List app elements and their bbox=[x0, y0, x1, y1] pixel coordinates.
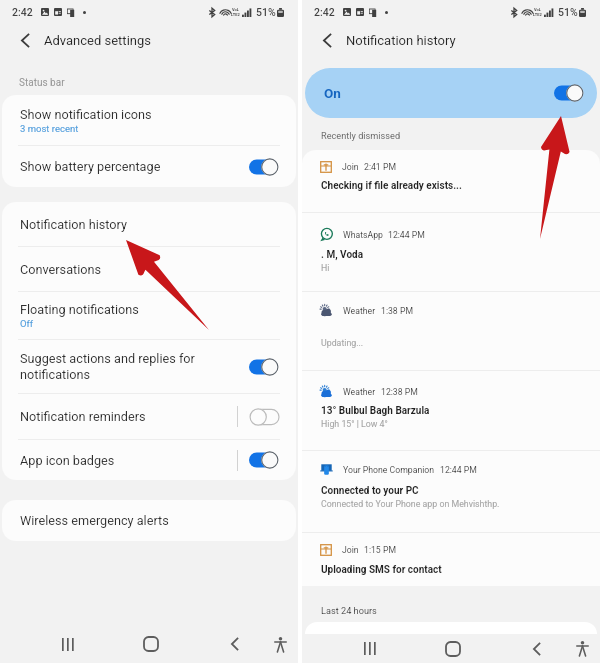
staticText: Your Phone Companion bbox=[343, 465, 435, 475]
staticText: Uploading SMS for contact bbox=[321, 564, 442, 576]
staticText: 12:44 PM bbox=[388, 230, 425, 240]
button[interactable]: Show battery percentage bbox=[2, 146, 296, 187]
staticText: 51% bbox=[558, 6, 578, 18]
staticText: 1:15 PM bbox=[364, 545, 396, 555]
button[interactable]: Your Phone Companion bbox=[302, 451, 600, 533]
staticText: Status bar bbox=[19, 77, 65, 89]
button[interactable]: Back bbox=[518, 634, 556, 663]
staticText: Connected to Your Phone app on Mehvishth… bbox=[321, 499, 500, 509]
staticText: Hi bbox=[321, 263, 330, 273]
staticText: Last 24 hours bbox=[321, 605, 377, 616]
button[interactable]: Floating notifications bbox=[2, 292, 296, 339]
button[interactable]: Notification reminders bbox=[2, 394, 296, 439]
staticText: 2:42 bbox=[314, 6, 335, 18]
button[interactable]: Accessibility bbox=[564, 634, 600, 663]
button[interactable]: Navigate up bbox=[317, 25, 337, 55]
staticText: Join bbox=[342, 545, 359, 555]
staticText: On bbox=[324, 85, 341, 101]
staticText: 2:41 PM bbox=[364, 162, 396, 172]
staticText: Checking if file already exists... bbox=[321, 180, 462, 192]
staticText: LTE2 bbox=[231, 12, 240, 17]
staticText: High 15° | Low 4° bbox=[321, 419, 388, 429]
staticText: Show battery percentage bbox=[20, 159, 161, 174]
staticText: Weather bbox=[343, 387, 376, 397]
button[interactable]: Conversations bbox=[2, 247, 296, 291]
button[interactable]: Home bbox=[132, 625, 170, 663]
button[interactable]: Join bbox=[302, 533, 600, 586]
staticText: 1:38 PM bbox=[381, 306, 413, 316]
staticText: Conversations bbox=[20, 262, 102, 277]
staticText: Advanced settings bbox=[44, 33, 151, 48]
staticText: . M, Voda bbox=[321, 249, 364, 261]
button[interactable]: Recents bbox=[351, 634, 389, 663]
staticText: VoL bbox=[534, 7, 541, 12]
staticText: Show notification icons bbox=[20, 107, 152, 122]
button[interactable]: Back bbox=[216, 625, 254, 663]
button[interactable]: Home bbox=[434, 634, 472, 663]
staticText: WhatsApp bbox=[343, 230, 383, 240]
staticText: 12:44 PM bbox=[440, 465, 477, 475]
staticText: Notification reminders bbox=[20, 409, 146, 424]
staticText: Recently dismissed bbox=[321, 130, 401, 141]
staticText: 51% bbox=[256, 6, 276, 18]
button[interactable]: Join bbox=[302, 150, 600, 213]
button[interactable]: Weather bbox=[302, 371, 600, 451]
button[interactable]: Suggest actions and replies for notifica… bbox=[2, 340, 296, 393]
button[interactable]: App icon badges bbox=[2, 440, 296, 480]
staticText: 3 most recent bbox=[20, 123, 79, 134]
staticText: Weather bbox=[343, 306, 376, 316]
button[interactable]: On bbox=[305, 68, 597, 118]
staticText: Updating... bbox=[321, 338, 364, 348]
staticText: Notification history bbox=[20, 217, 128, 232]
button[interactable]: Accessibility bbox=[262, 625, 298, 663]
staticText: LTE2 bbox=[533, 12, 542, 17]
staticText: Wireless emergency alerts bbox=[20, 513, 169, 528]
staticText: 12:38 PM bbox=[381, 387, 418, 397]
staticText: Notification history bbox=[346, 33, 456, 48]
button[interactable]: Weather bbox=[302, 292, 600, 371]
staticText: Off bbox=[20, 318, 34, 329]
staticText: 2:42 bbox=[12, 6, 33, 18]
staticText: 13° Bulbul Bagh Barzula bbox=[321, 405, 430, 417]
button[interactable]: WhatsApp bbox=[302, 213, 600, 292]
button[interactable]: Show notification icons bbox=[2, 95, 296, 145]
staticText: Suggest actions and replies for notifica… bbox=[20, 351, 195, 382]
staticText: Join bbox=[342, 162, 359, 172]
button[interactable]: Navigate up bbox=[15, 25, 35, 55]
staticText: App icon badges bbox=[20, 453, 115, 468]
staticText: Connected to your PC bbox=[321, 485, 419, 497]
staticText: Floating notifications bbox=[20, 302, 139, 317]
button[interactable]: Notification history bbox=[2, 202, 296, 246]
button[interactable]: Recents bbox=[49, 625, 87, 663]
button[interactable]: Wireless emergency alerts bbox=[2, 500, 296, 541]
staticText: VoL bbox=[232, 7, 239, 12]
